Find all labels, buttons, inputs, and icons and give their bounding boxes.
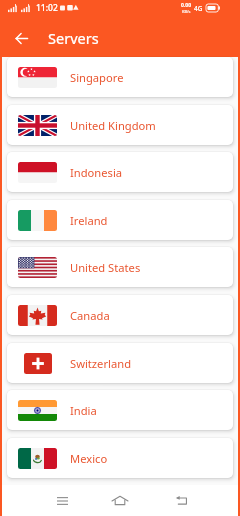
button[interactable]: India: [7, 390, 233, 430]
button[interactable]: Back: [2, 18, 42, 57]
button[interactable]: Mexico: [7, 438, 233, 478]
staticText: 4G: [194, 4, 203, 13]
staticText: Singapore: [70, 70, 124, 85]
staticText: United States: [70, 260, 141, 275]
staticText: Switzerland: [70, 356, 132, 371]
button[interactable]: United States: [7, 247, 233, 287]
staticText: 11:02: [36, 2, 58, 14]
button[interactable]: Recent apps: [40, 485, 84, 516]
button[interactable]: Home: [98, 485, 142, 516]
staticText: Mexico: [70, 451, 108, 466]
staticText: KB/s: [182, 9, 191, 14]
button[interactable]: United Kingdom: [7, 105, 233, 145]
staticText: United Kingdom: [70, 118, 156, 133]
button[interactable]: Ireland: [7, 200, 233, 240]
staticText: India: [70, 403, 97, 418]
button[interactable]: Back: [156, 485, 200, 516]
button[interactable]: Indonesia: [7, 152, 233, 192]
staticText: Canada: [70, 308, 110, 323]
staticText: 0.00: [181, 2, 191, 9]
staticText: Indonesia: [70, 165, 123, 180]
button[interactable]: Canada: [7, 295, 233, 335]
staticText: Servers: [48, 28, 99, 48]
button[interactable]: Singapore: [7, 57, 233, 97]
button[interactable]: Switzerland: [7, 343, 233, 383]
staticText: Ireland: [70, 213, 108, 228]
